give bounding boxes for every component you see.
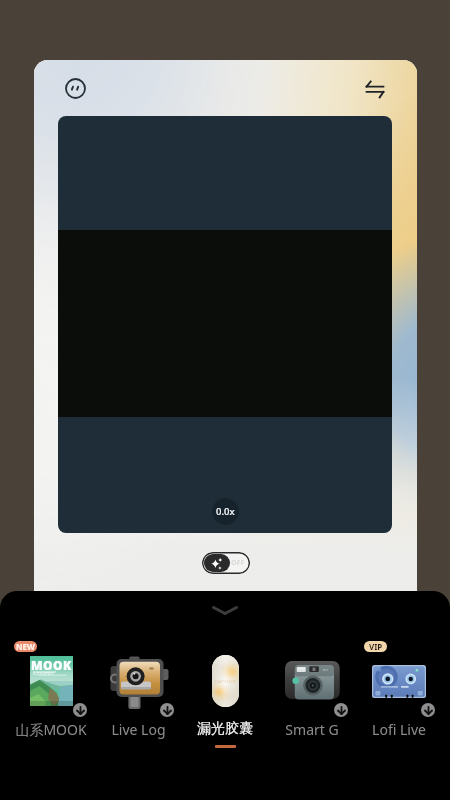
button[interactable]: Filter info [59, 72, 91, 104]
staticText: 山系MOOK [15, 720, 87, 739]
button[interactable]: Download Live Log [160, 703, 174, 717]
button[interactable]: Download Lofi Live [356, 632, 442, 757]
button[interactable]: Download 山系MOOK [73, 703, 87, 717]
button[interactable]: Download Smart G [269, 632, 355, 757]
button[interactable]: Collapse [203, 599, 247, 621]
staticText: MOOK [31, 657, 72, 673]
staticText: 漏光胶囊 [197, 720, 253, 738]
staticText: Live Log [111, 720, 166, 739]
staticText: A JOURNEY [33, 671, 54, 676]
button[interactable]: Download Lofi Live [421, 703, 435, 717]
staticText: Smart G [285, 720, 339, 739]
staticText: VIP [369, 641, 383, 652]
button[interactable]: MOOK [8, 632, 94, 757]
staticText: CAPSULE [215, 679, 237, 684]
staticText: OFF [231, 558, 245, 568]
staticText: Lofi Live [372, 720, 426, 739]
button[interactable]: CAPSULE [182, 632, 268, 757]
button[interactable]: Light leak off [202, 552, 250, 574]
button[interactable]: Switch camera [358, 73, 391, 105]
button[interactable]: Download Smart G [334, 703, 348, 717]
button[interactable]: Download Live Log [95, 632, 181, 757]
button[interactable]: Zoom level [212, 498, 239, 525]
staticText: 0.0x [216, 505, 235, 518]
staticText: NEW [16, 641, 35, 652]
